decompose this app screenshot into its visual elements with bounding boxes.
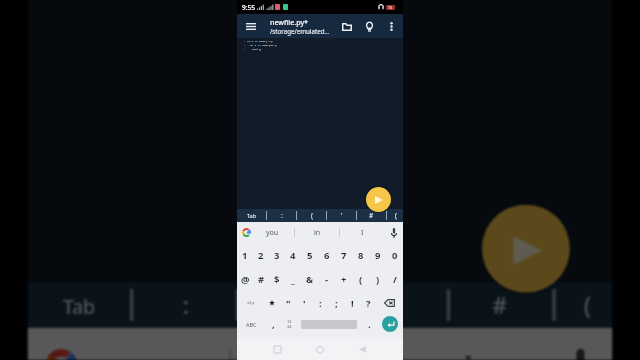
button[interactable]: ( <box>381 209 410 222</box>
button[interactable]: 4 <box>285 243 301 267</box>
button[interactable]: # <box>253 267 269 291</box>
button[interactable]: Space <box>297 315 361 333</box>
staticText: ( <box>266 40 268 43</box>
staticText: Tab <box>247 212 257 219</box>
staticText: ' <box>303 297 306 310</box>
button[interactable]: you <box>251 222 294 243</box>
button[interactable]: More options <box>384 19 399 34</box>
staticText: =\< <box>247 300 255 307</box>
button[interactable]: ( <box>352 267 369 291</box>
button[interactable]: Open file <box>339 19 354 34</box>
staticText: ' <box>394 289 401 321</box>
staticText: 9 <box>375 249 381 262</box>
staticText: 1 <box>242 249 248 262</box>
button[interactable]: 12 <box>281 315 297 333</box>
staticText: ? <box>366 297 371 310</box>
staticText: , <box>272 318 275 331</box>
button[interactable]: =\< <box>237 291 264 315</box>
staticText: 6 <box>324 249 330 262</box>
button[interactable]: 8 <box>352 243 369 267</box>
staticText: range <box>259 40 266 43</box>
button[interactable]: Back <box>341 339 384 360</box>
button[interactable]: . <box>361 315 377 333</box>
staticText: (i+ <box>269 44 273 47</box>
staticText: I <box>464 349 475 360</box>
staticText: : <box>319 297 322 310</box>
button[interactable]: Run <box>482 205 570 293</box>
button[interactable]: in <box>295 222 339 243</box>
button[interactable]: you <box>77 328 228 360</box>
button[interactable]: : <box>267 209 296 222</box>
staticText: + <box>341 273 347 286</box>
staticText: 10 <box>268 40 271 43</box>
button[interactable]: " <box>280 291 296 315</box>
staticText: in <box>258 44 262 47</box>
staticText: 3 <box>244 48 246 51</box>
button[interactable]: ' <box>345 282 447 328</box>
staticText: 5 <box>307 249 313 262</box>
button[interactable]: 5 <box>301 243 318 267</box>
staticText: # <box>258 273 265 286</box>
button[interactable]: : <box>312 291 328 315</box>
staticText: : <box>281 211 283 220</box>
button[interactable]: Backspace <box>376 291 403 315</box>
button[interactable]: ? <box>360 291 376 315</box>
staticText: /storage/emulated... <box>270 27 330 35</box>
staticText: # <box>492 289 510 321</box>
button[interactable]: Hints <box>362 19 377 34</box>
staticText: for <box>247 40 252 43</box>
button[interactable]: 2 <box>253 243 269 267</box>
button[interactable]: ( <box>535 282 637 328</box>
button[interactable]: ( <box>297 209 326 222</box>
button[interactable]: 1 <box>237 243 253 267</box>
staticText: ( <box>288 289 295 321</box>
button[interactable]: ABC <box>237 315 265 333</box>
button[interactable]: - <box>318 267 335 291</box>
button[interactable]: 0 <box>386 243 403 267</box>
staticText: ) <box>376 273 380 286</box>
button[interactable]: Voice input <box>384 222 403 243</box>
button[interactable] <box>264 291 280 315</box>
button[interactable]: ; <box>328 291 344 315</box>
button[interactable]: 6 <box>318 243 335 267</box>
staticText: ( <box>359 273 363 286</box>
button[interactable]: ' <box>296 291 312 315</box>
staticText: _ <box>291 273 295 286</box>
button[interactable]: ( <box>239 282 341 328</box>
button[interactable]: ) <box>369 267 386 291</box>
button[interactable]: $ <box>269 267 285 291</box>
button[interactable]: : <box>133 282 235 328</box>
staticText: 1 <box>244 40 246 43</box>
button[interactable]: Voice input <box>545 328 612 360</box>
staticText: in <box>314 228 321 238</box>
button[interactable]: ' <box>327 209 356 222</box>
button[interactable]: Run <box>366 187 391 212</box>
button[interactable]: _ <box>285 267 301 291</box>
staticText: 4 <box>290 249 296 262</box>
button[interactable]: # <box>450 282 552 328</box>
button[interactable]: 3 <box>269 243 285 267</box>
staticText: ; <box>335 297 338 310</box>
button[interactable]: I <box>340 222 384 243</box>
button[interactable]: in <box>232 328 387 360</box>
staticText: ( <box>584 289 591 321</box>
staticText: " <box>286 297 291 310</box>
staticText: - <box>325 273 329 286</box>
button[interactable]: / <box>386 267 403 291</box>
button[interactable]: + <box>335 267 352 291</box>
button[interactable]: Tab <box>28 282 130 328</box>
button[interactable]: & <box>301 267 318 291</box>
button[interactable]: Tab <box>237 209 266 222</box>
button[interactable]: Recents <box>256 339 298 360</box>
staticText: ABC <box>246 321 257 328</box>
button[interactable]: 9 <box>369 243 386 267</box>
button[interactable]: Enter <box>377 315 403 333</box>
button[interactable]: 7 <box>335 243 352 267</box>
button[interactable]: @ <box>237 267 253 291</box>
button[interactable]: # <box>357 209 386 222</box>
button[interactable]: ! <box>344 291 360 315</box>
button[interactable]: , <box>265 315 281 333</box>
button[interactable]: Home <box>298 339 341 360</box>
button[interactable]: I <box>390 328 545 360</box>
button[interactable]: Menu <box>242 18 259 35</box>
